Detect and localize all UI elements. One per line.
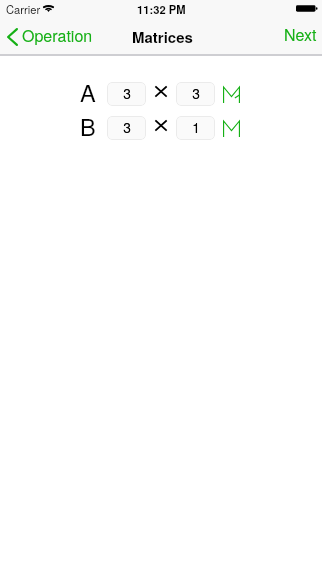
staticText: 3 [192,83,200,103]
staticText: 3 [123,117,131,137]
staticText: Matrices [132,26,193,47]
button[interactable]: 3 [176,82,215,106]
staticText: Operation [22,24,93,47]
staticText: 1 [192,117,200,137]
staticText: 3 [123,117,131,137]
button[interactable]: Operation [0,18,101,52]
staticText: B [80,109,96,143]
staticText: 3 [123,83,131,103]
staticText: 3 [123,83,131,103]
staticText: Carrier [6,1,41,17]
button[interactable]: 1 [176,116,215,140]
staticText: 3 [192,83,200,103]
button[interactable]: 3 [107,82,146,106]
button[interactable]: 3 [107,116,146,140]
button[interactable]: Edit matrix values [223,87,240,103]
button[interactable]: Next [277,17,322,51]
staticText: 1 [192,117,200,137]
staticText: 11:32 PM [137,1,186,17]
staticText: A [80,75,96,109]
button[interactable]: Edit matrix values [223,121,240,137]
staticText: Next [284,23,317,46]
